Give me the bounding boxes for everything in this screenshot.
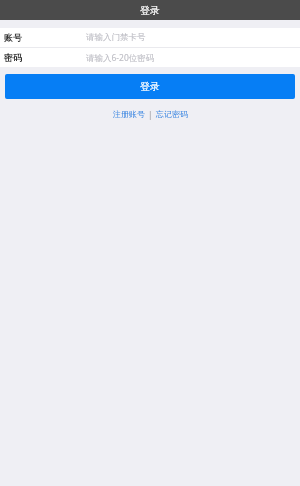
staticText: 忘记密码 bbox=[156, 109, 188, 119]
staticText: 注册账号 bbox=[113, 109, 145, 119]
staticText: 账号 bbox=[4, 32, 22, 43]
button[interactable]: 密码 bbox=[0, 48, 300, 67]
staticText: 请输入门禁卡号 bbox=[86, 32, 146, 43]
staticText: | bbox=[148, 109, 153, 120]
staticText: 请输入6-20位密码 bbox=[86, 52, 155, 64]
button[interactable]: 注册账号 bbox=[111, 108, 147, 120]
staticText: 登录 bbox=[140, 4, 160, 17]
staticText: 登录 bbox=[140, 80, 160, 93]
staticText: 密码 bbox=[4, 52, 22, 63]
button[interactable]: 忘记密码 bbox=[154, 108, 190, 120]
button[interactable]: 账号 bbox=[0, 28, 300, 47]
button[interactable]: 登录 bbox=[5, 74, 295, 99]
